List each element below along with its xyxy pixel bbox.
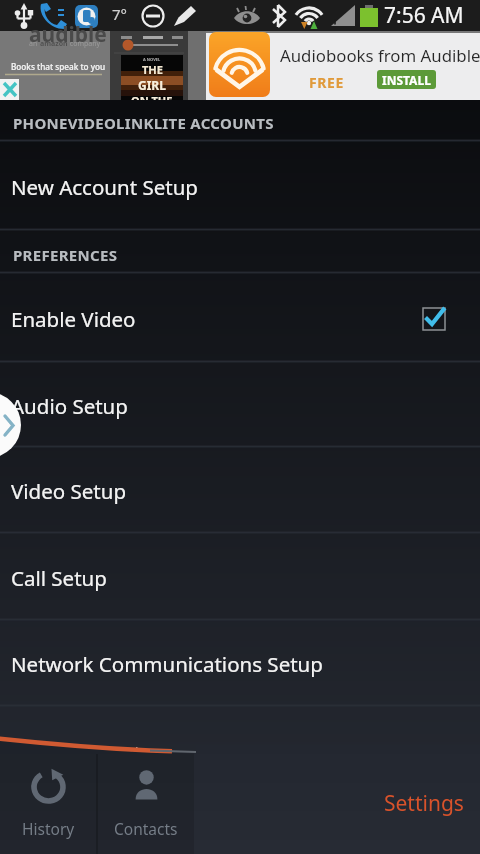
button[interactable]: Advanced Setup	[0, 707, 480, 798]
staticText: PREFERENCES	[13, 245, 118, 265]
staticText: INSTALL	[382, 72, 431, 88]
staticText: Advanced Setup	[11, 739, 167, 767]
button[interactable]: Network Communications Setup	[0, 621, 480, 707]
staticText: Network Communications Setup	[11, 650, 323, 678]
staticText: Books that speak to you	[11, 61, 106, 72]
button[interactable]: Settings	[384, 789, 464, 818]
staticText: PHONEVIDEOLINKLITE ACCOUNTS	[13, 113, 274, 133]
staticText: audible	[29, 20, 107, 49]
button[interactable]: Video Setup	[0, 448, 480, 534]
button[interactable]: Audio Setup	[0, 363, 480, 448]
staticText: an	[29, 39, 40, 49]
staticText: Audio Setup	[11, 392, 128, 420]
staticText: Contacts	[114, 818, 178, 839]
staticText: ON THE	[131, 93, 173, 100]
staticText: Audiobooks from Audible	[280, 44, 480, 67]
button[interactable]: Close ad	[0, 79, 19, 100]
button[interactable]: audible	[0, 31, 480, 100]
staticText: New Account Setup	[11, 173, 198, 201]
staticText: company	[68, 39, 101, 49]
staticText: A NOVEL	[143, 57, 161, 62]
button[interactable]: New Account Setup	[0, 142, 480, 231]
staticText: 7°	[112, 4, 128, 24]
staticText: Video Setup	[11, 477, 126, 505]
button[interactable]: Open navigation drawer	[0, 392, 21, 458]
staticText: THE	[142, 62, 163, 77]
button[interactable]: Enable Video	[0, 274, 480, 363]
staticText: 7:56 AM	[384, 1, 464, 30]
button[interactable]: Call Setup	[0, 534, 480, 621]
staticText: amazon	[40, 39, 68, 49]
staticText: FREE	[309, 73, 344, 92]
button[interactable]: Contacts	[98, 754, 194, 854]
button[interactable]: INSTALL	[377, 70, 436, 89]
staticText: Call Setup	[11, 564, 107, 592]
staticText: History	[22, 818, 75, 839]
staticText: Enable Video	[11, 305, 136, 333]
staticText: GIRL	[138, 77, 166, 93]
button[interactable]: History	[0, 754, 96, 854]
